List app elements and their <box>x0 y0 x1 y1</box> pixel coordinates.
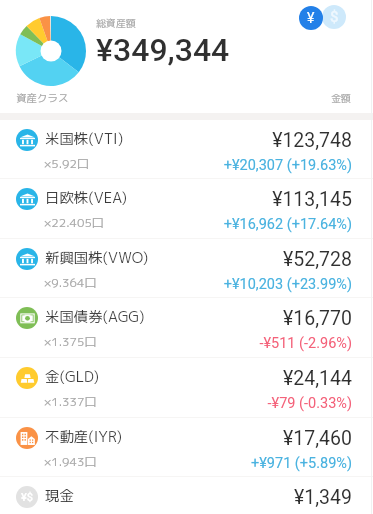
button[interactable]: 日欧株(VEA) <box>0 179 373 239</box>
staticText: 日欧株(VEA) <box>45 188 127 208</box>
staticText: +¥20,307 (+19.63%) <box>223 157 352 174</box>
button[interactable]: ¥$ <box>0 477 373 514</box>
staticText: 米国株(VTI) <box>45 129 124 149</box>
staticText: -¥511 (-2.96%) <box>259 335 352 352</box>
staticText: 金額 <box>331 91 351 105</box>
staticText: -¥79 (-0.33%) <box>267 395 352 412</box>
staticText: ¥16,770 <box>283 307 352 330</box>
staticText: 資産クラス <box>16 91 69 106</box>
staticText: 米国債券(AGG) <box>45 307 145 327</box>
staticText: 現金 <box>45 486 74 506</box>
staticText: ¥113,145 <box>272 188 352 211</box>
staticText: ¥123,748 <box>272 129 352 152</box>
button[interactable]: 金(GLD) <box>0 358 373 418</box>
staticText: 金(GLD) <box>45 367 100 387</box>
button[interactable]: 米国株(VTI) <box>0 120 373 180</box>
staticText: 総資産額 <box>96 16 136 30</box>
staticText: ×9.364口 <box>44 274 97 291</box>
button[interactable]: Show amounts in US dollars <box>322 5 346 29</box>
staticText: ¥17,460 <box>283 427 352 450</box>
staticText: $ <box>330 8 339 26</box>
staticText: ×5.92口 <box>44 155 89 172</box>
staticText: 不動産(IYR) <box>45 427 123 447</box>
staticText: ×1.943口 <box>44 453 97 470</box>
staticText: 新興国株(VWO) <box>45 248 149 268</box>
button[interactable]: 新興国株(VWO) <box>0 239 373 299</box>
staticText: ×1.375口 <box>44 333 97 350</box>
button[interactable]: 不動産(IYR) <box>0 418 373 478</box>
staticText: ×22.405口 <box>44 214 104 231</box>
button[interactable]: 米国債券(AGG) <box>0 298 373 358</box>
staticText: +¥16,962 (+17.64%) <box>223 216 352 233</box>
staticText: +¥971 (+5.89%) <box>250 455 352 472</box>
staticText: ¥349,344 <box>96 31 230 69</box>
staticText: ¥$ <box>21 491 34 504</box>
staticText: ¥ <box>307 10 315 26</box>
staticText: ¥1,349 <box>294 486 352 509</box>
button[interactable]: Show amounts in Japanese yen <box>299 6 323 30</box>
staticText: ×1.337口 <box>44 393 97 410</box>
staticText: ¥52,728 <box>283 248 352 271</box>
staticText: ¥24,144 <box>283 367 352 390</box>
staticText: +¥10,203 (+23.99%) <box>223 276 352 293</box>
